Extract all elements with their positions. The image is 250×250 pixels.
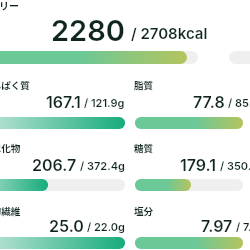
staticText: / 372.4g — [80, 159, 125, 172]
staticText: 206.7 — [32, 155, 77, 173]
staticText: / 350.0g — [220, 159, 250, 172]
staticText: 脂質 — [134, 78, 154, 92]
staticText: 食物繊維 — [0, 204, 21, 218]
staticText: 塩分 — [134, 204, 154, 218]
staticText: 77.8 — [193, 92, 225, 110]
staticText: カロリー — [0, 0, 19, 12]
staticText: 7.97 — [201, 216, 233, 234]
staticText: 炭水化物 — [0, 141, 21, 155]
staticText: / 7.5g — [236, 220, 250, 233]
staticText: 179.1 — [180, 155, 217, 173]
staticText: / 121.9g — [84, 96, 125, 109]
staticText: 167.1 — [46, 92, 81, 110]
staticText: / 22.0g — [87, 220, 125, 233]
staticText: / 2708kcal — [131, 24, 208, 42]
staticText: たんぱく質 — [0, 78, 30, 92]
staticText: 2280 — [51, 13, 125, 48]
staticText: / 85.3g — [228, 96, 250, 109]
staticText: 25.0 — [49, 216, 84, 234]
staticText: 糖質 — [134, 141, 154, 155]
